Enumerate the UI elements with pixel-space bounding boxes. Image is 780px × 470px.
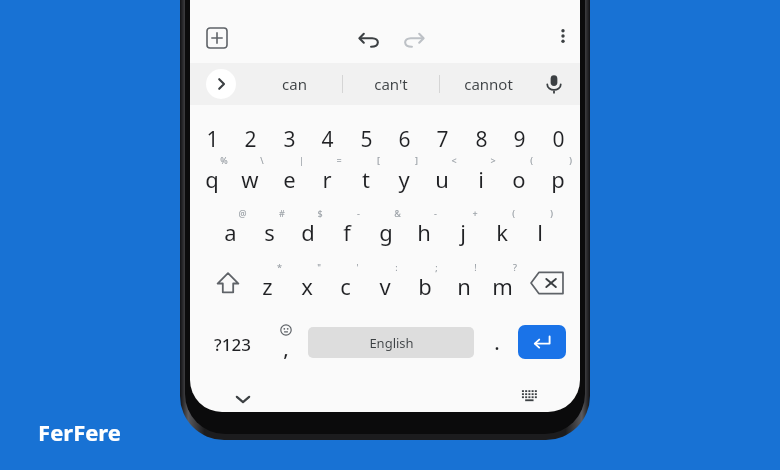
button[interactable]: g [366,209,405,249]
button[interactable]: Change keyboard [520,389,540,403]
button[interactable]: 0 [539,116,577,156]
button[interactable]: Enter [518,325,566,359]
staticText: 1 [206,125,219,154]
button[interactable]: x [287,262,326,304]
staticText: x [301,271,313,301]
button[interactable]: 5 [347,116,385,156]
staticText: can [282,74,307,94]
staticText: , [283,335,289,362]
staticText: 7 [436,125,449,154]
button[interactable]: can't [343,63,439,105]
staticText: ! [474,261,477,273]
button[interactable]: d [288,209,327,249]
staticText: s [264,217,275,247]
button[interactable]: y [385,156,423,196]
button[interactable]: h [404,209,443,249]
button[interactable]: 6 [385,116,423,156]
button[interactable]: u [423,156,461,196]
staticText: h [417,217,431,247]
button[interactable]: b [405,262,444,304]
staticText: 9 [513,125,526,154]
button[interactable]: 1 [193,116,231,156]
button[interactable]: 7 [423,116,461,156]
button[interactable]: Redo [401,26,427,52]
button[interactable]: e [270,156,308,196]
staticText: 2 [244,125,257,154]
staticText: ( [512,207,515,219]
button[interactable]: More options [552,25,574,47]
button[interactable]: r [308,156,346,196]
staticText: English [369,334,414,352]
staticText: cannot [464,74,513,94]
staticText: - [357,207,360,219]
button[interactable]: s [250,209,289,249]
staticText: & [394,207,401,219]
button[interactable]: m [483,262,522,304]
button[interactable]: cannot [440,63,536,105]
button[interactable]: Add clipboard item [206,27,228,49]
staticText: ?123 [214,333,251,356]
button[interactable]: 3 [270,116,308,156]
staticText: # [279,207,285,219]
button[interactable]: z [248,262,287,304]
staticText: y [398,164,410,194]
staticText: 8 [475,125,488,154]
staticText: : [395,261,398,273]
staticText: z [262,271,273,301]
staticText: d [301,217,315,247]
button[interactable]: w [231,156,269,196]
staticText: 4 [321,125,334,154]
button[interactable]: c [326,262,365,304]
staticText: o [512,164,526,194]
staticText: > [490,154,496,166]
staticText: \ [260,154,264,166]
staticText: ; [435,261,438,273]
staticText: v [379,271,391,301]
button[interactable]: t [347,156,385,196]
staticText: ] [415,154,418,166]
button[interactable]: n [444,262,483,304]
button[interactable]: a [211,209,250,249]
staticText: p [551,164,565,194]
button[interactable]: j [443,209,482,249]
staticText: c [340,271,351,301]
staticText: 5 [360,125,373,154]
button[interactable]: 9 [500,116,538,156]
button[interactable]: Undo [356,26,382,52]
staticText: ? [513,261,517,273]
button[interactable]: Expand suggestions [206,69,236,99]
button[interactable]: q [193,156,231,196]
button[interactable]: 2 [231,116,269,156]
staticText: j [460,217,466,247]
button[interactable]: 4 [308,116,346,156]
button[interactable]: Voice input [542,72,566,96]
button[interactable]: v [365,262,404,304]
staticText: q [205,164,219,194]
button[interactable]: 8 [462,116,500,156]
staticText: ' [356,261,359,273]
staticText: w [241,164,259,194]
button[interactable]: l [520,209,559,249]
staticText: u [435,164,449,194]
button[interactable]: i [462,156,500,196]
staticText: [ [377,154,380,166]
button[interactable]: Emoji [266,322,306,366]
button[interactable]: f [327,209,366,249]
staticText: = [336,154,342,166]
staticText: n [457,271,471,301]
button[interactable]: o [500,156,538,196]
button[interactable]: ?123 [200,322,264,366]
button[interactable]: English [308,327,474,358]
button[interactable]: k [482,209,521,249]
button[interactable]: . [480,322,514,366]
staticText: g [379,217,393,247]
button[interactable]: Backspace [530,271,564,295]
staticText: | [299,154,304,166]
button[interactable]: can [246,63,342,105]
staticText: $ [317,207,323,219]
staticText: . [494,329,500,356]
button[interactable]: Shift [215,270,241,296]
button[interactable]: p [539,156,577,196]
button[interactable]: Hide keyboard [232,388,254,410]
staticText: k [496,217,508,247]
